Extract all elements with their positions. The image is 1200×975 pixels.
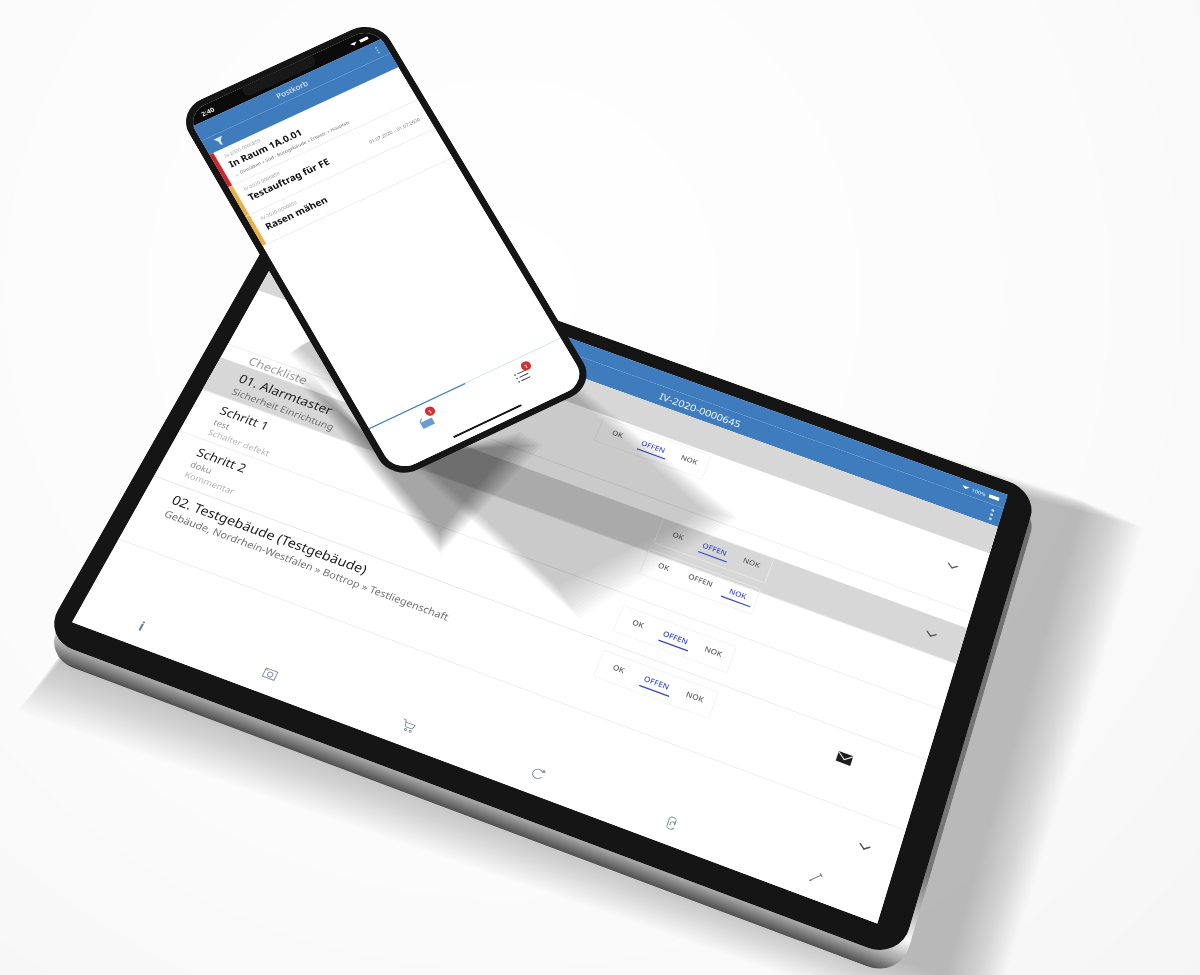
button[interactable]: Inbox	[11, 641, 180, 703]
staticText: Gebäude, Nordrhein-Westfalen » Bottrop »…	[29, 541, 476, 563]
button[interactable]: OK	[709, 331, 769, 377]
button[interactable]: Schritt 1	[0, 337, 1196, 416]
other: Mail	[1072, 536, 1094, 552]
button[interactable]: OK	[0, 136, 1196, 246]
staticText: 01.07.2020 – 01.07.2020	[245, 188, 335, 199]
button[interactable]: Photo	[244, 698, 308, 762]
staticText: i	[76, 717, 82, 744]
button[interactable]: Mail	[1072, 536, 1094, 552]
button[interactable]: OFFEN	[765, 435, 824, 481]
button[interactable]: IV-2020-0000858	[11, 162, 349, 220]
button[interactable]: IV-2020-0000859	[11, 95, 349, 161]
staticText: OFFEN	[775, 447, 814, 463]
button[interactable]: Info	[47, 698, 111, 762]
staticText: OK	[727, 447, 744, 463]
button[interactable]: OK	[703, 514, 763, 560]
staticText: OK	[725, 526, 742, 542]
button[interactable]: Attach	[850, 698, 914, 762]
button[interactable]: Tasks	[180, 641, 349, 703]
button[interactable]: OFFEN	[763, 514, 822, 560]
button[interactable]: 01. Alarmtaster	[0, 273, 1196, 336]
button[interactable]: NOK	[824, 435, 883, 481]
button[interactable]: Sync	[650, 698, 714, 762]
button[interactable]: Sign	[1064, 698, 1128, 762]
button[interactable]: Expand	[0, 617, 1196, 729]
staticText: 1	[106, 653, 112, 665]
staticText: 02. Testgebäude (Testgebäude)	[29, 512, 336, 541]
button[interactable]: Schritt 2	[0, 417, 1196, 496]
staticText: ... Dinslaken » Süd - Bürogebäude » Erle…	[31, 140, 235, 151]
button[interactable]: IV-2020-0000859	[11, 221, 349, 279]
staticText: NOK	[840, 447, 867, 463]
button[interactable]: Checkliste	[0, 247, 1196, 273]
button[interactable]: 02. Testgebäude (Testgebäude)	[0, 502, 1196, 616]
button[interactable]: OK	[705, 435, 765, 481]
